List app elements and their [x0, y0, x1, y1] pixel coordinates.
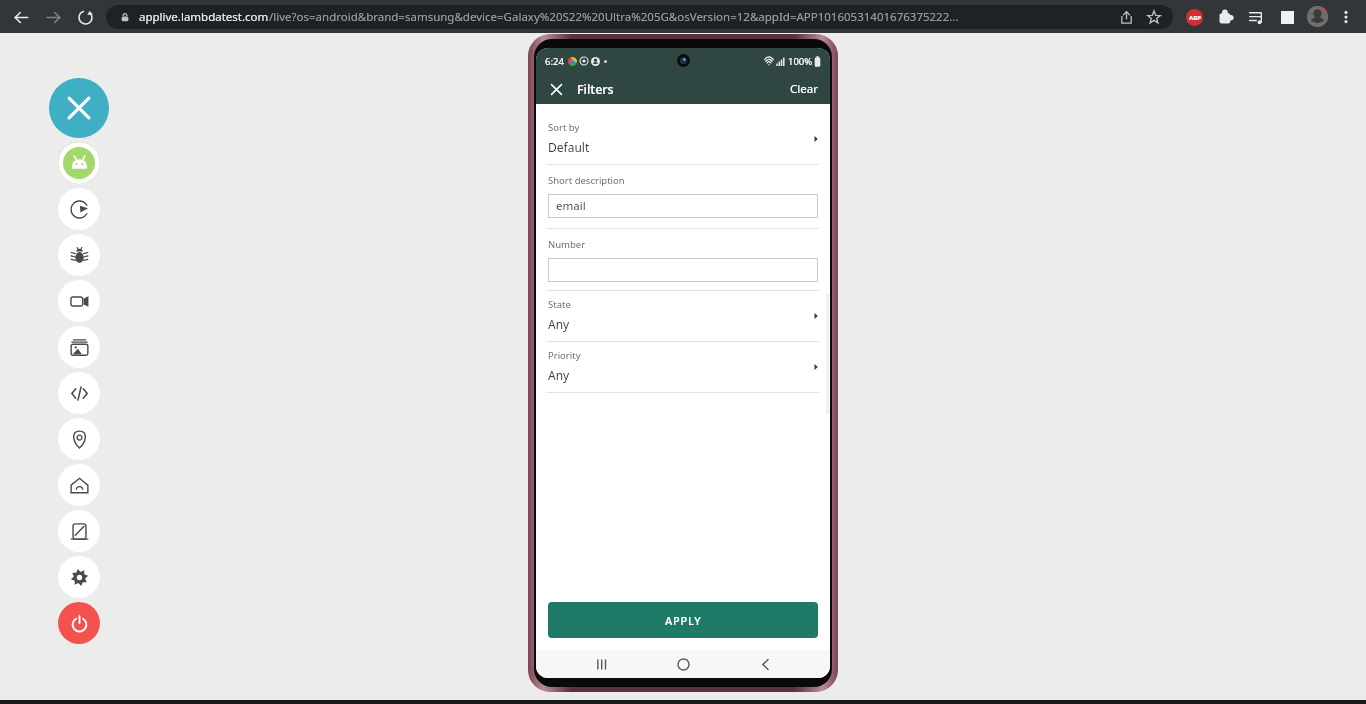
button[interactable]: Bookmark [1143, 6, 1165, 28]
button[interactable]: Close [544, 77, 568, 101]
staticText: Sort by [548, 121, 580, 134]
staticText: 6:24 [545, 55, 564, 68]
staticText: 100% [788, 55, 813, 68]
button[interactable]: Share [1115, 6, 1137, 28]
staticText: Default [548, 139, 590, 155]
button[interactable]: Power [58, 602, 100, 644]
button[interactable]: Back [8, 4, 34, 30]
staticText: email [556, 198, 586, 214]
button[interactable]: Sort by [536, 114, 830, 164]
button[interactable]: Network throttle [58, 510, 100, 552]
button[interactable]: Stop session [49, 78, 109, 138]
button[interactable]: Reload [72, 4, 98, 30]
staticText: Short description [548, 174, 625, 187]
button[interactable]: Extensions [1214, 6, 1236, 28]
staticText: Any [548, 367, 570, 383]
staticText: applive.lambdatest.com [139, 9, 269, 25]
button[interactable]: Record video [58, 280, 100, 322]
button[interactable]: email [548, 194, 818, 218]
button[interactable]: Home [666, 650, 700, 678]
button[interactable]: APPLY [548, 602, 818, 638]
button[interactable]: Home [58, 464, 100, 506]
button[interactable]: Forward [40, 4, 66, 30]
staticText: Number [548, 238, 586, 251]
button[interactable]: Priority [536, 342, 830, 392]
button[interactable]: Clear [786, 78, 822, 100]
button[interactable] [548, 258, 818, 282]
button[interactable]: applive.lambdatest.com [106, 5, 1173, 29]
button[interactable]: Geolocation [58, 418, 100, 460]
staticText: Clear [790, 81, 818, 97]
button[interactable]: Rotate [58, 188, 100, 230]
button[interactable]: Playlist [1245, 6, 1267, 28]
staticText: Any [548, 316, 570, 332]
staticText: State [548, 298, 571, 311]
button[interactable]: Screenshot [58, 326, 100, 368]
staticText: Priority [548, 349, 581, 362]
button[interactable]: Device [58, 142, 100, 184]
button[interactable]: Recents [584, 650, 618, 678]
staticText: Filters [577, 81, 614, 98]
button[interactable]: AdBlock Plus [1183, 6, 1205, 28]
staticText: /live?os=android&brand=samsung&device=Ga… [269, 9, 959, 25]
button[interactable]: More options [1336, 7, 1356, 27]
staticText: ABP [1189, 14, 1201, 22]
button[interactable]: Side panel [1276, 6, 1298, 28]
button[interactable]: Profile [1307, 6, 1328, 27]
button[interactable]: State [536, 291, 830, 341]
button[interactable]: Dev tools [58, 372, 100, 414]
button[interactable]: Report bug [58, 234, 100, 276]
button[interactable]: Back [748, 650, 782, 678]
staticText: APPLY [665, 613, 702, 628]
button[interactable]: Settings [58, 556, 100, 598]
